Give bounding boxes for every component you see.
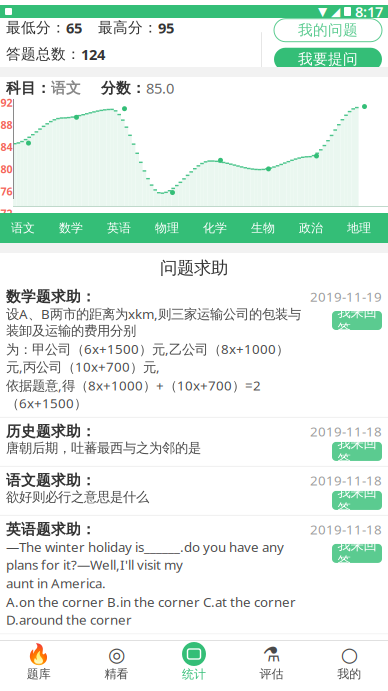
staticText: 语文题求助： [6,471,96,489]
staticText: ○ [341,643,358,666]
staticText: 英语 [107,221,131,235]
staticText: 题库 [27,667,51,681]
staticText: 我来回答 [337,656,376,688]
staticText: 精看 [104,667,128,681]
button[interactable]: ⚗ [233,641,310,685]
button[interactable]: 英语题求助： [0,516,388,633]
staticText: 政治 [299,221,323,235]
button[interactable]: 语文题求助： [0,467,388,515]
staticText: 历史题求助： [6,422,96,440]
button[interactable]: 我来回答 [332,311,382,330]
staticText: 生物 [251,221,275,235]
staticText: 124 [81,44,105,64]
staticText: 76 [0,184,12,198]
staticText: 为：甲公司（6x+1500）元,乙公司（8x+1000）元,丙公司（10x+70… [6,340,289,375]
staticText: ⚗ [263,643,281,666]
staticText: —The winter holiday is______.do you have… [6,538,284,573]
staticText: 数学题求助： [6,639,96,657]
staticText: 164 [81,71,105,90]
staticText: 语文 [11,221,35,235]
staticText: 🔥 [26,643,51,666]
button[interactable]: 统计 [155,641,233,685]
staticText: 统计 [182,667,206,682]
staticText: 最高分： [82,19,158,37]
button[interactable]: 我来回答 [332,544,382,563]
staticText: 84 [0,140,12,154]
staticText: 唐朝后期，吐蕃最西与之为邻的是 [6,440,201,456]
staticText: 数学题求助： [6,287,96,305]
staticText: 提问总数： [6,72,81,90]
staticText: 我来回答 [337,537,376,570]
staticText: 2019-11-19 [310,288,382,305]
staticText: 设A、B两市的距离为xkm,则三家运输公司的包装与装卸及运输的费用分别 [6,305,301,339]
button[interactable]: 历史题求助： [0,418,388,466]
staticText: 2019-11-18 [310,472,382,489]
button[interactable]: 数学题求助： [0,634,388,691]
staticText: ◎ [108,643,125,666]
button[interactable]: 我要提问 [274,48,382,71]
staticText: 2019-11-18 [310,639,382,657]
staticText: 分数： [81,79,146,97]
staticText: 85.0 [146,78,174,98]
staticText: 80 [0,162,12,176]
button[interactable]: 我的问题 [274,19,382,42]
staticText: A.on the corner B.in the corner C.at the… [6,593,296,628]
staticText: 我的问题 [298,21,358,39]
staticText: 数学 [59,221,83,235]
staticText: 地理 [347,221,371,235]
button[interactable]: 🔥 [0,641,78,685]
staticText: 答题总数： [6,45,81,63]
staticText: 我要提问 [298,50,358,68]
button[interactable]: ○ [310,641,388,685]
button[interactable]: 我来回答 [332,662,382,681]
staticText: 我的 [337,667,361,681]
staticText: 95 [158,18,174,37]
staticText: ▼ [318,5,327,18]
staticText: 我来回答 [337,304,376,337]
staticText: 我来回答 [337,484,376,517]
staticText: 8:17 [355,2,383,21]
staticText: 物理 [155,221,179,235]
staticText: 英语题求助： [6,520,96,538]
staticText: 88 [0,118,12,132]
staticText: aunt in America. [6,574,106,592]
staticText: ◢ [331,5,340,18]
staticText: 化学 [203,221,227,235]
staticText: 评估 [260,667,284,681]
staticText: 语文 [51,79,81,97]
staticText: 2019-11-18 [310,521,382,538]
staticText: 2019-11-18 [310,423,382,440]
staticText: 火车票上的车次号有两个意义，一是数字越小表示车速越快，1～98次为特 [6,656,292,690]
button[interactable]: ◎ [78,641,155,685]
staticText: 最低分： [6,19,66,37]
staticText: 依据题意,得（8x+1000）+（10x+700）=2（6x+1500） [6,376,261,412]
staticText: 92 [0,95,12,110]
staticText: 我来回答 [337,435,376,468]
staticText: 欲好则必行之意思是什么 [6,489,149,505]
button[interactable]: 数学题求助： [0,283,388,417]
button[interactable]: 我来回答 [332,442,382,461]
staticText: 65 [66,18,82,37]
staticText: 科目： [6,79,51,97]
staticText: 问题求助 [160,257,228,279]
staticText: 72 [0,206,12,220]
button[interactable]: 我来回答 [332,491,382,510]
